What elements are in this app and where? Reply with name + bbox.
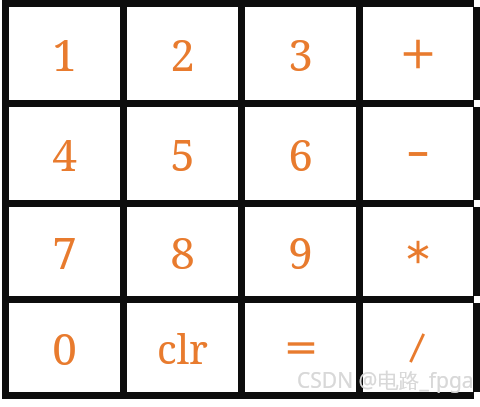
button[interactable]: 6 [245, 107, 356, 200]
button[interactable]: = [245, 303, 356, 392]
button[interactable]: * [363, 207, 473, 296]
button[interactable]: - [363, 107, 473, 200]
staticText: 6 [288, 124, 313, 184]
button[interactable]: clr [127, 303, 238, 392]
button[interactable]: 3 [245, 7, 356, 100]
staticText: 5 [170, 124, 195, 184]
button[interactable]: + [363, 7, 473, 100]
button[interactable]: 0 [9, 303, 120, 392]
staticText: 2 [170, 24, 195, 84]
staticText: 8 [170, 222, 195, 282]
button[interactable]: 4 [9, 107, 120, 200]
staticText: CSDN @电路_fpga [297, 366, 474, 395]
staticText: 9 [288, 222, 313, 282]
staticText: 0 [52, 318, 77, 378]
staticText: clr [157, 321, 208, 375]
button[interactable]: 2 [127, 7, 238, 100]
button[interactable]: 9 [245, 207, 356, 296]
button[interactable]: / [363, 303, 473, 392]
button[interactable]: 1 [9, 7, 120, 100]
staticText: 7 [52, 222, 77, 282]
staticText: 4 [52, 124, 77, 184]
button[interactable]: 7 [9, 207, 120, 296]
button[interactable]: 5 [127, 107, 238, 200]
staticText: 1 [52, 24, 77, 84]
staticText: 3 [288, 24, 313, 84]
button[interactable]: 8 [127, 207, 238, 296]
